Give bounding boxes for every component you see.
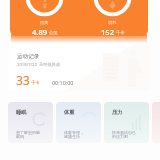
staticText: 距离 [40, 20, 49, 25]
staticText: 公里 [48, 30, 58, 36]
staticText: 体重 [64, 109, 75, 116]
button[interactable]: 睡眠 [8, 102, 53, 143]
button[interactable]: 距离 [10, 0, 79, 36]
button[interactable]: 消耗 [78, 0, 147, 36]
staticText: 33 [16, 72, 30, 88]
staticText: 体重管理， 健康生活 [64, 130, 84, 140]
staticText: 运动记录 [17, 53, 40, 60]
button[interactable]: 体重 [56, 102, 101, 143]
staticText: 千卡 [30, 80, 40, 86]
staticText: 睡眠 [16, 109, 27, 116]
button[interactable]: 运动记录 [9, 44, 150, 91]
staticText: 千卡 [115, 30, 125, 36]
button[interactable]: 压力 [104, 102, 149, 143]
staticText: 2018/7/22 马甲线养成 [17, 62, 60, 68]
staticText: 快来测试自己 的压力吧 [112, 130, 136, 140]
staticText: 4.89 [32, 27, 48, 36]
button[interactable]: 心率 [152, 102, 160, 143]
staticText: 消耗 [108, 20, 117, 25]
staticText: 想了解您的睡 眠吗 [16, 130, 40, 140]
staticText: 00:10:00 [52, 79, 74, 86]
staticText: 压力 [112, 109, 123, 116]
staticText: 152 [101, 27, 115, 36]
